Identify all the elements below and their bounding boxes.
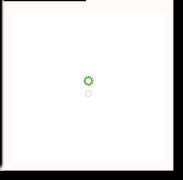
group: Loading — [83, 76, 93, 97]
